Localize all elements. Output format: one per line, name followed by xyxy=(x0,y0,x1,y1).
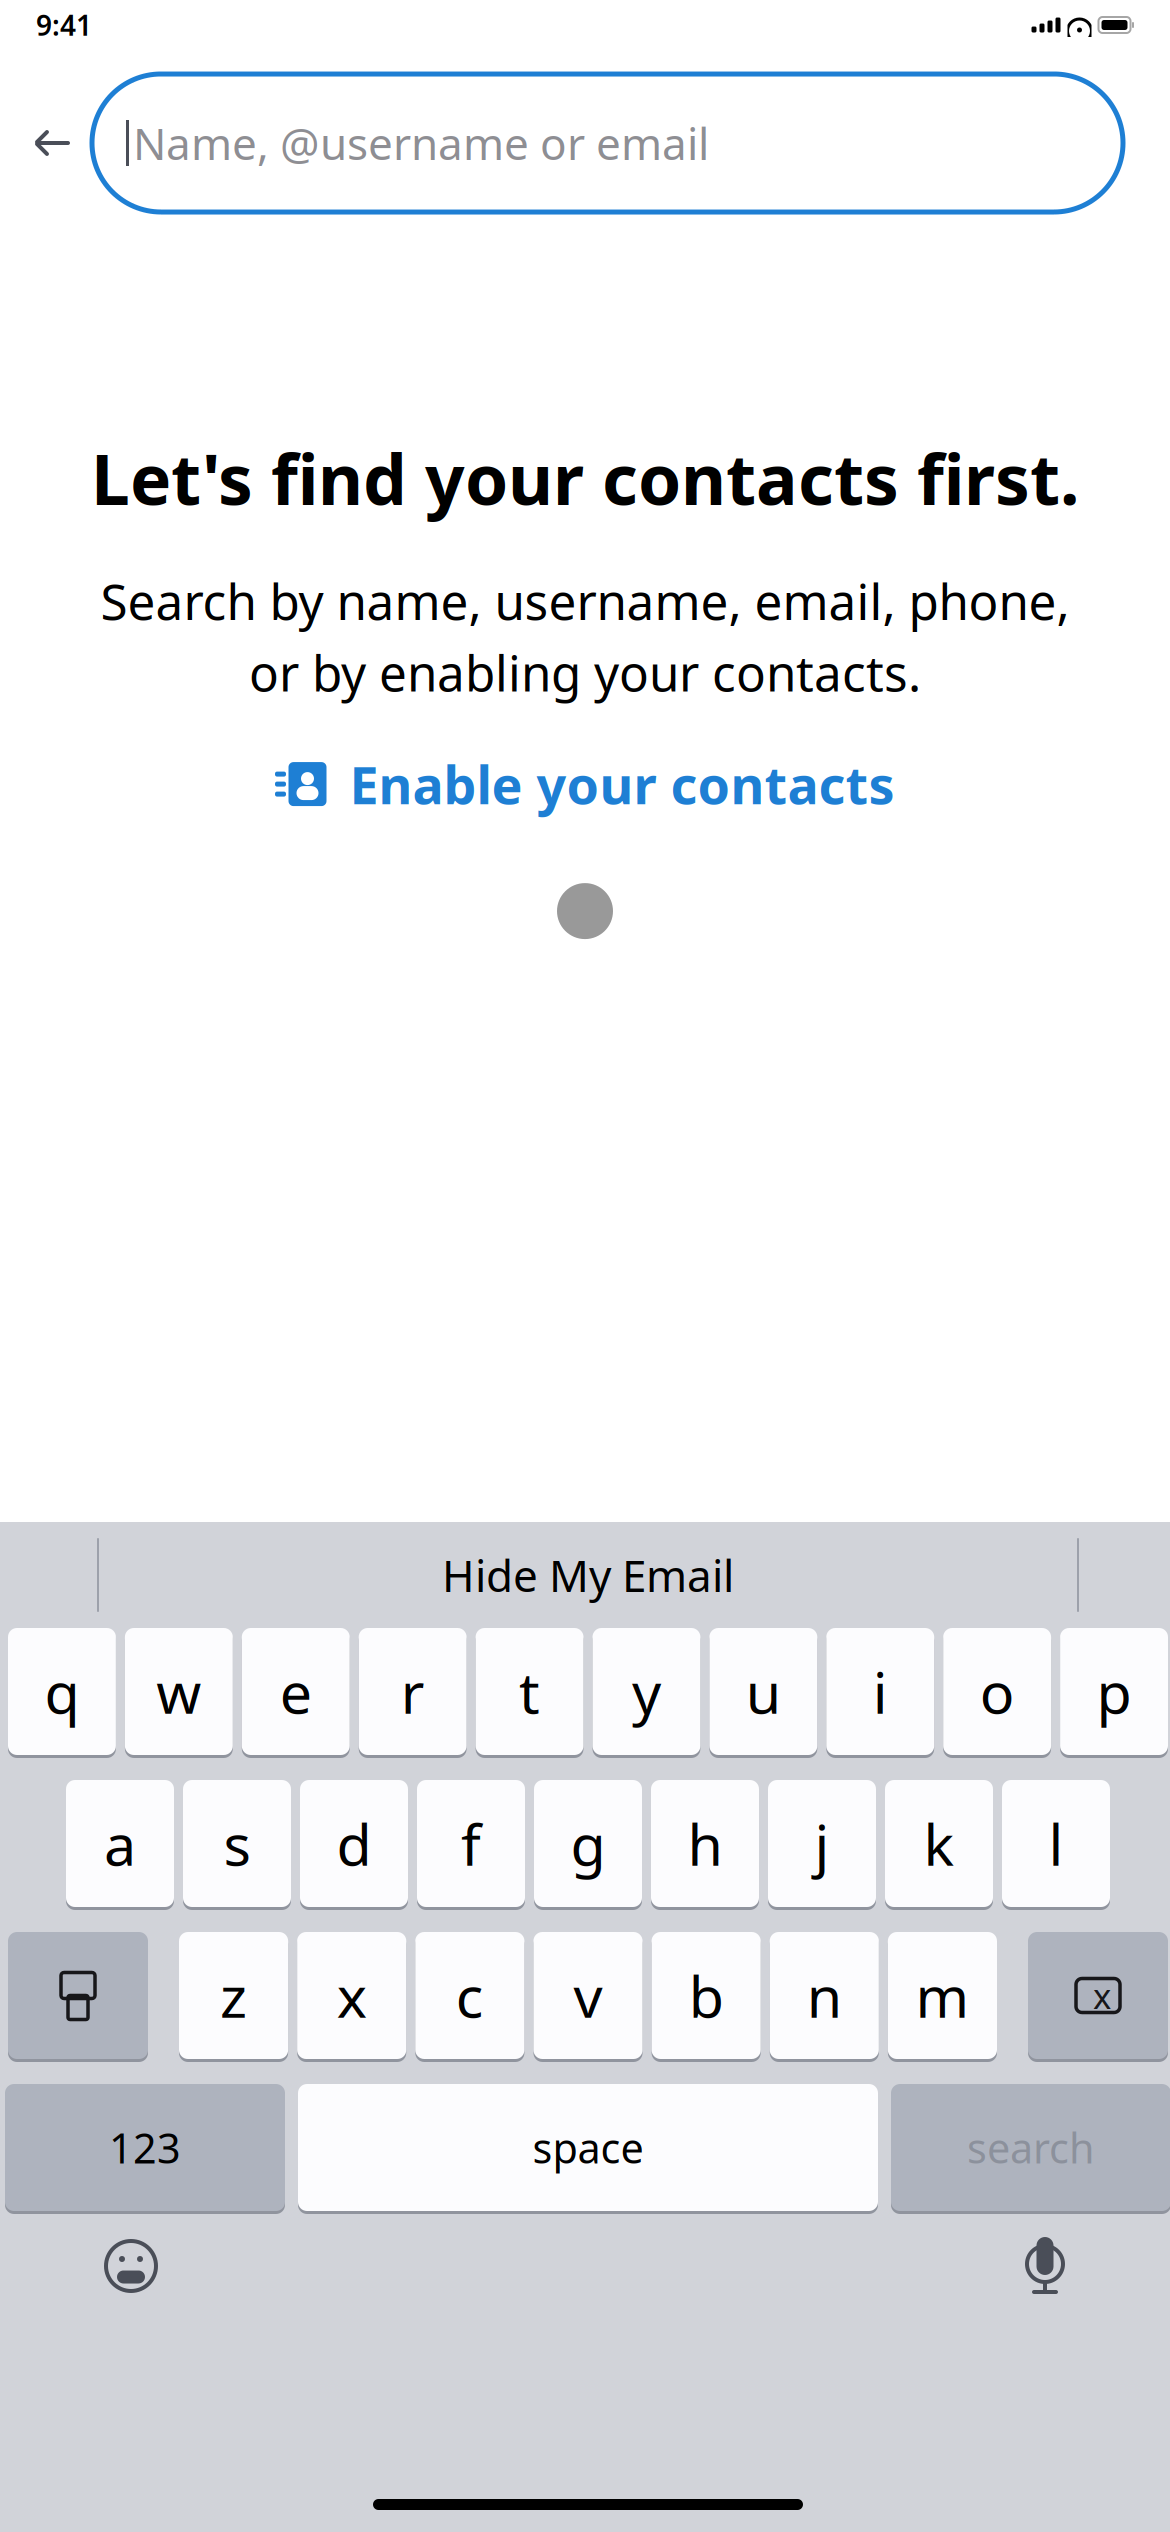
button[interactable]: u xyxy=(709,1628,817,1755)
button[interactable]: j xyxy=(768,1780,876,1907)
button[interactable]: p xyxy=(1060,1628,1168,1755)
button[interactable]: n xyxy=(770,1932,879,2059)
staticText: y xyxy=(632,1653,661,1729)
button[interactable]: Shift xyxy=(8,1932,148,2059)
button[interactable]: h xyxy=(651,1780,759,1907)
button[interactable]: Emoji xyxy=(81,2221,181,2311)
staticText: t xyxy=(519,1653,540,1729)
button[interactable]: space xyxy=(298,2084,878,2211)
button[interactable]: o xyxy=(943,1628,1051,1755)
staticText: or by enabling your contacts. xyxy=(249,640,921,705)
staticText: f xyxy=(461,1805,481,1881)
button[interactable]: g xyxy=(534,1780,642,1907)
button[interactable]: Back xyxy=(14,108,92,178)
staticText: u xyxy=(746,1653,781,1729)
staticText: a xyxy=(104,1805,136,1881)
staticText: q xyxy=(44,1653,79,1729)
staticText: space xyxy=(532,2120,643,2175)
staticText: 123 xyxy=(109,2120,181,2175)
button[interactable]: Enable your contacts xyxy=(255,747,914,821)
button[interactable]: Dictation xyxy=(995,2221,1095,2311)
staticText: v xyxy=(573,1957,602,2033)
button[interactable]: search xyxy=(891,2084,1170,2211)
button[interactable]: b xyxy=(652,1932,761,2059)
staticText: Hide My Email xyxy=(442,1546,734,1604)
staticText: k xyxy=(923,1805,954,1881)
staticText: h xyxy=(687,1805,722,1881)
button[interactable]: z xyxy=(179,1932,288,2059)
button[interactable]: q xyxy=(8,1628,116,1755)
staticText: z xyxy=(220,1957,247,2033)
staticText: c xyxy=(456,1957,484,2033)
button[interactable]: s xyxy=(183,1780,291,1907)
button[interactable]: d xyxy=(300,1780,408,1907)
staticText: p xyxy=(1096,1653,1131,1729)
button[interactable]: a xyxy=(66,1780,174,1907)
button[interactable]: w xyxy=(125,1628,233,1755)
button[interactable]: i xyxy=(826,1628,934,1755)
staticText: r xyxy=(401,1653,425,1729)
staticText: w xyxy=(156,1653,201,1729)
button[interactable]: Search field xyxy=(92,74,1123,212)
staticText: 9:41 xyxy=(36,6,92,44)
staticText: l xyxy=(1048,1805,1063,1881)
button[interactable]: c xyxy=(415,1932,524,2059)
button[interactable]: x xyxy=(297,1932,406,2059)
staticText: d xyxy=(336,1805,371,1881)
staticText: Enable your contacts xyxy=(349,750,894,819)
staticText: Name, @username or email xyxy=(133,114,709,172)
button[interactable]: l xyxy=(1002,1780,1110,1907)
button[interactable]: Hide My Email xyxy=(412,1527,764,1623)
staticText: o xyxy=(980,1653,1015,1729)
staticText: g xyxy=(570,1805,605,1881)
button[interactable]: e xyxy=(242,1628,350,1755)
staticText: x xyxy=(337,1957,367,2033)
staticText: m xyxy=(915,1957,969,2033)
staticText: Search by name, username, email, phone, xyxy=(100,568,1069,634)
staticText: e xyxy=(280,1653,312,1729)
staticText: i xyxy=(873,1653,888,1729)
staticText: b xyxy=(689,1957,724,2033)
staticText: search xyxy=(967,2120,1095,2175)
staticText: x xyxy=(1093,1972,1111,2018)
staticText: j xyxy=(814,1805,829,1881)
staticText: Let's find your contacts first. xyxy=(91,432,1079,524)
button[interactable]: y xyxy=(592,1628,700,1755)
button[interactable]: 123 xyxy=(5,2084,285,2211)
button[interactable]: v xyxy=(533,1932,642,2059)
button[interactable]: f xyxy=(417,1780,525,1907)
button[interactable]: k xyxy=(885,1780,993,1907)
button[interactable]: r xyxy=(359,1628,467,1755)
button[interactable]: Delete xyxy=(1028,1932,1168,2059)
button[interactable]: t xyxy=(476,1628,583,1755)
button[interactable]: m xyxy=(888,1932,997,2059)
staticText: n xyxy=(807,1957,842,2033)
staticText: s xyxy=(223,1805,250,1881)
